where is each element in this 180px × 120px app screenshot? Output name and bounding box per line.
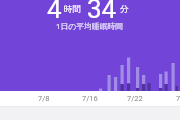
staticText: 7/29 [176,94,180,103]
button[interactable]: 4 [0,0,180,91]
staticText: 34 [87,0,117,24]
staticText: 7/8 [38,94,50,103]
staticText: 時間 [64,4,81,15]
staticText: 1日の平均睡眠時間 [56,21,124,32]
staticText: 7/22 [127,94,143,103]
staticText: 7/16 [82,94,98,103]
staticText: 分 [120,4,129,15]
button[interactable]: 7/8 [0,91,180,106]
staticText: 4 [47,0,62,24]
